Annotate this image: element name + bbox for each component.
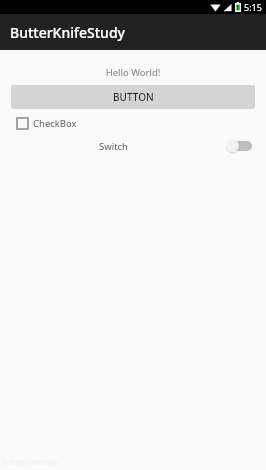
staticText: Hello World! bbox=[0, 66, 266, 79]
button[interactable]: CheckBox bbox=[17, 114, 77, 132]
other: Switch toggle bbox=[225, 139, 252, 153]
staticText: Switch bbox=[99, 140, 128, 153]
staticText: BUTTON bbox=[113, 90, 154, 104]
staticText: 5:15 bbox=[244, 1, 262, 13]
staticText: CheckBox bbox=[33, 117, 77, 130]
button[interactable]: BUTTON bbox=[11, 85, 255, 109]
staticText: ButterKnifeStudy bbox=[10, 23, 125, 42]
button[interactable]: Switch bbox=[99, 136, 252, 156]
